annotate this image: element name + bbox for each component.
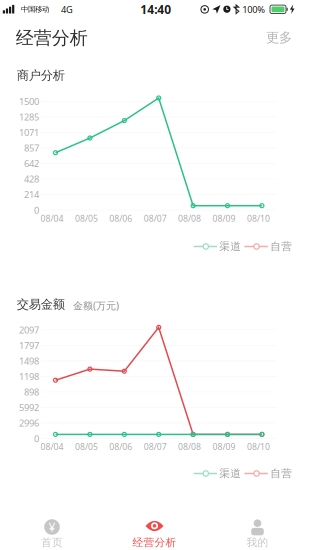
staticText: 857 <box>24 141 39 154</box>
staticText: 中国移动 <box>21 5 49 14</box>
staticText: 4G <box>61 3 73 16</box>
staticText: 08/07 <box>144 212 167 224</box>
staticText: 100% <box>242 3 265 16</box>
staticText: 898 <box>24 386 39 398</box>
staticText: 08/06 <box>109 441 132 452</box>
staticText: 08/08 <box>178 212 201 224</box>
staticText: ¥ <box>48 519 55 535</box>
staticText: 经营分析 <box>132 536 176 549</box>
staticText: 08/10 <box>247 441 270 452</box>
staticText: 08/09 <box>212 212 235 224</box>
staticText: 08/04 <box>40 441 63 452</box>
staticText: 14:40 <box>140 1 171 17</box>
staticText: 1198 <box>19 370 39 383</box>
staticText: 经营分析 <box>16 27 88 49</box>
button[interactable]: 经营分析 <box>103 509 206 550</box>
staticText: 更多 <box>266 29 292 46</box>
button[interactable]: 更多 <box>256 22 302 52</box>
staticText: 金额(万元) <box>73 299 119 312</box>
staticText: 0 <box>34 432 39 445</box>
staticText: 渠道 <box>219 467 241 480</box>
button[interactable]: 我的 <box>206 509 309 550</box>
staticText: 08/10 <box>247 212 270 224</box>
staticText: 1071 <box>19 126 39 139</box>
staticText: 08/08 <box>178 441 201 452</box>
staticText: 2097 <box>19 323 39 336</box>
staticText: 214 <box>24 188 39 201</box>
staticText: 1498 <box>19 354 39 367</box>
staticText: 08/05 <box>75 441 98 452</box>
staticText: 自营 <box>270 467 292 480</box>
button[interactable]: ¥ <box>0 509 103 550</box>
staticText: 2996 <box>19 417 39 429</box>
staticText: 我的 <box>246 536 268 549</box>
staticText: 08/07 <box>144 441 167 452</box>
staticText: 0 <box>34 204 39 216</box>
staticText: 642 <box>24 157 39 170</box>
staticText: 自营 <box>270 240 292 253</box>
staticText: 5992 <box>19 401 39 414</box>
staticText: 商户分析 <box>17 68 65 83</box>
staticText: 1285 <box>19 110 39 123</box>
staticText: 交易金额 <box>17 297 65 312</box>
staticText: 1797 <box>19 339 39 352</box>
staticText: 08/05 <box>75 212 98 224</box>
staticText: 首页 <box>41 536 63 549</box>
staticText: 08/09 <box>212 441 235 452</box>
staticText: 08/06 <box>109 212 132 224</box>
staticText: 08/04 <box>40 212 63 224</box>
staticText: 1500 <box>19 95 39 108</box>
staticText: 渠道 <box>219 240 241 253</box>
staticText: 428 <box>24 173 39 185</box>
